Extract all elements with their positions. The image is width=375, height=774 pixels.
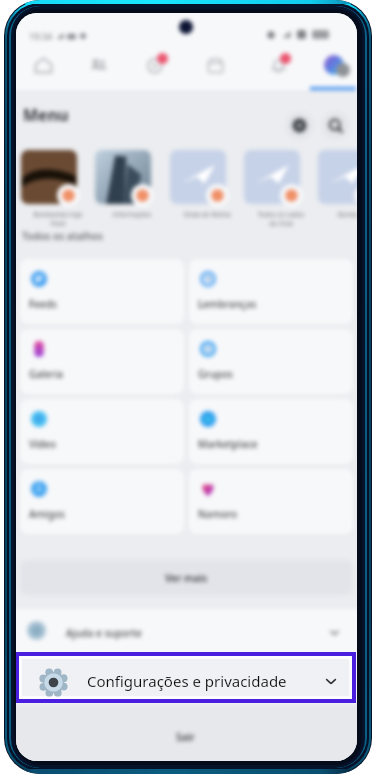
staticText: Onda de Retina: [172, 210, 242, 219]
staticText: Ajuda e suporte: [66, 626, 142, 640]
staticText: Configurações e privacidade: [87, 671, 287, 691]
button[interactable]: Watch: [129, 51, 186, 90]
button[interactable]: Settings: [286, 112, 313, 139]
button[interactable]: Grupos: [189, 329, 353, 394]
button[interactable]: Marketplace: [186, 51, 243, 90]
button[interactable]: Sair: [16, 704, 357, 761]
button[interactable]: Configurações e privacidade: [22, 659, 349, 696]
staticText: Informações: [97, 210, 167, 219]
button[interactable]: Bombando hoje Feed: [21, 138, 95, 233]
staticText: 19:34: [29, 30, 53, 42]
button[interactable]: Menu: [300, 51, 357, 90]
button[interactable]: Todos os Lados do Chat: [244, 138, 318, 233]
staticText: Amigos: [29, 507, 65, 521]
button[interactable]: Informações: [95, 138, 169, 233]
button[interactable]: Feeds: [20, 259, 184, 324]
button[interactable]: Bombando: [318, 138, 357, 233]
button[interactable]: Notifications: [243, 51, 300, 90]
button[interactable]: Galeria: [20, 329, 184, 394]
staticText: Lembranças: [198, 297, 257, 311]
staticText: Bombando hoje Feed: [23, 210, 93, 228]
staticText: Todos os atalhos: [22, 229, 103, 243]
staticText: Sair: [176, 730, 195, 744]
button[interactable]: Marketplace: [189, 399, 353, 464]
button[interactable]: Namoro: [189, 469, 353, 534]
button[interactable]: Ajuda e suporte: [16, 609, 357, 653]
staticText: Namoro: [198, 507, 238, 521]
staticText: Ver mais: [165, 571, 208, 585]
button[interactable]: Ver mais: [20, 560, 353, 595]
staticText: Feeds: [29, 297, 57, 311]
staticText: Galeria: [29, 367, 64, 381]
staticText: Grupos: [198, 367, 233, 381]
button[interactable]: Friends: [72, 51, 129, 90]
staticText: Vídeo: [29, 437, 56, 451]
button[interactable]: Lembranças: [189, 259, 353, 324]
staticText: Todos os Lados do Chat: [246, 210, 316, 228]
staticText: Marketplace: [198, 437, 258, 451]
button[interactable]: Amigos: [20, 469, 184, 534]
staticText: Menu: [23, 104, 69, 126]
staticText: Bombando: [320, 210, 357, 219]
button[interactable]: Vídeo: [20, 399, 184, 464]
button[interactable]: Onda de Retina: [170, 138, 244, 233]
button[interactable]: Search: [322, 112, 349, 139]
button[interactable]: Home: [16, 51, 72, 90]
